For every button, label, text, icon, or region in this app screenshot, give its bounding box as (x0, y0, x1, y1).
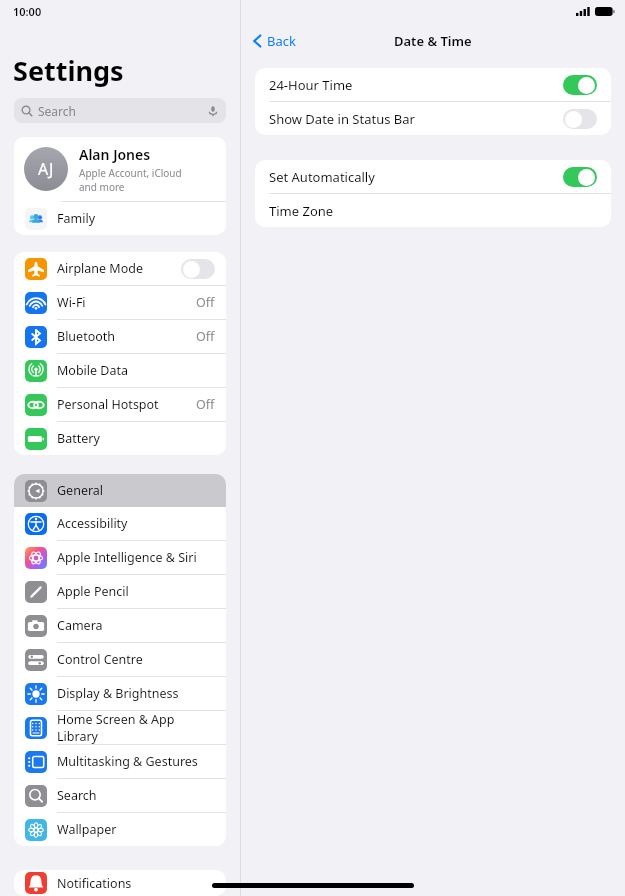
staticText: Apple Account, iCloud (79, 166, 182, 180)
staticText: 10:00 (13, 4, 42, 19)
staticText: Bluetooth (57, 328, 196, 345)
button[interactable]: Set Automatically (255, 160, 611, 193)
staticText: Search (57, 787, 215, 804)
button[interactable]: Home Screen & App Library (14, 711, 226, 744)
button[interactable]: On (563, 167, 597, 187)
button[interactable]: Search (14, 779, 226, 812)
button[interactable]: Apple Pencil (14, 575, 226, 608)
staticText: Apple Pencil (57, 583, 215, 600)
staticText: Back (267, 32, 296, 50)
staticText: Apple Intelligence & Siri (57, 549, 215, 566)
staticText: Personal Hotspot (57, 396, 196, 413)
button[interactable]: Off (181, 259, 215, 279)
button[interactable]: Search (14, 98, 226, 123)
other: Voice search (207, 105, 219, 117)
staticText: Family (57, 210, 215, 227)
staticText: Off (196, 328, 215, 345)
button[interactable]: Notifications (14, 870, 226, 896)
staticText: 24-Hour Time (269, 76, 563, 94)
button[interactable]: General (14, 474, 226, 507)
button[interactable]: Mobile Data (14, 354, 226, 387)
button[interactable]: Control Centre (14, 643, 226, 676)
staticText: Off (196, 396, 215, 413)
button[interactable]: Off (563, 109, 597, 129)
button[interactable]: Time Zone (255, 194, 611, 227)
button[interactable]: Multitasking & Gestures (14, 745, 226, 778)
button[interactable]: On (563, 75, 597, 95)
button[interactable]: Wallpaper (14, 813, 226, 846)
staticText: AJ (38, 158, 54, 180)
staticText: Mobile Data (57, 362, 215, 379)
button[interactable]: AJ (14, 137, 226, 201)
button[interactable]: Back (249, 29, 300, 53)
staticText: Date & Time (394, 32, 472, 50)
button[interactable]: Airplane Mode (14, 252, 226, 285)
staticText: Notifications (57, 875, 215, 892)
button[interactable]: Bluetooth (14, 320, 226, 353)
staticText: Alan Jones (79, 145, 151, 164)
button[interactable]: Display & Brightness (14, 677, 226, 710)
staticText: Show Date in Status Bar (269, 110, 563, 128)
button[interactable]: Accessibility (14, 507, 226, 540)
staticText: Search (38, 103, 207, 119)
staticText: Wallpaper (57, 821, 215, 838)
staticText: Multitasking & Gestures (57, 753, 215, 770)
staticText: and more (79, 180, 125, 194)
button[interactable]: Personal Hotspot (14, 388, 226, 421)
staticText: Battery (57, 430, 215, 447)
staticText: Display & Brightness (57, 685, 215, 702)
staticText: Set Automatically (269, 168, 563, 186)
button[interactable]: Family (14, 202, 226, 235)
staticText: Time Zone (269, 202, 334, 220)
staticText: Wi-Fi (57, 294, 196, 311)
button[interactable]: Wi-Fi (14, 286, 226, 319)
staticText: Camera (57, 617, 215, 634)
button[interactable]: Battery (14, 422, 226, 455)
staticText: General (57, 482, 215, 499)
button[interactable]: 24-Hour Time (255, 68, 611, 101)
staticText: Accessibility (57, 515, 215, 532)
staticText: Airplane Mode (57, 260, 181, 277)
button[interactable]: Apple Intelligence & Siri (14, 541, 226, 574)
staticText: Settings (13, 52, 124, 89)
staticText: Off (196, 294, 215, 311)
staticText: Control Centre (57, 651, 215, 668)
button[interactable]: Camera (14, 609, 226, 642)
staticText: Home Screen & App Library (57, 711, 215, 744)
button[interactable]: Show Date in Status Bar (255, 102, 611, 135)
